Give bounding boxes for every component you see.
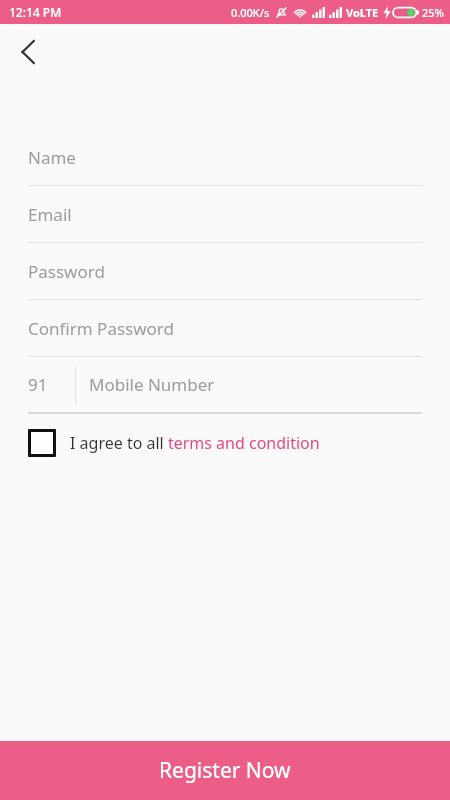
staticText: 25% <box>422 5 444 20</box>
staticText: Email <box>28 203 72 226</box>
button[interactable]: Confirm Password <box>0 300 450 357</box>
staticText: Confirm Password <box>28 317 174 340</box>
staticText: I agree to all terms and condition <box>70 432 320 454</box>
staticText: 12:14 PM <box>9 4 62 20</box>
button[interactable]: Email <box>0 186 450 243</box>
staticText: Name <box>28 146 76 169</box>
button[interactable]: Register Now <box>0 741 450 800</box>
staticText: Password <box>28 260 105 283</box>
staticText: 0.00K/s <box>231 5 270 20</box>
staticText: Mobile Number <box>89 373 215 396</box>
staticText: VoLTE <box>346 5 379 20</box>
button[interactable]: 91 <box>0 357 450 414</box>
staticText: 91 <box>28 373 48 396</box>
button[interactable]: Password <box>0 243 450 300</box>
staticText: Register Now <box>159 756 291 785</box>
button[interactable]: Name <box>0 129 450 186</box>
button[interactable]: Back <box>6 30 50 74</box>
button[interactable]: I agree to all terms and condition <box>28 429 450 457</box>
